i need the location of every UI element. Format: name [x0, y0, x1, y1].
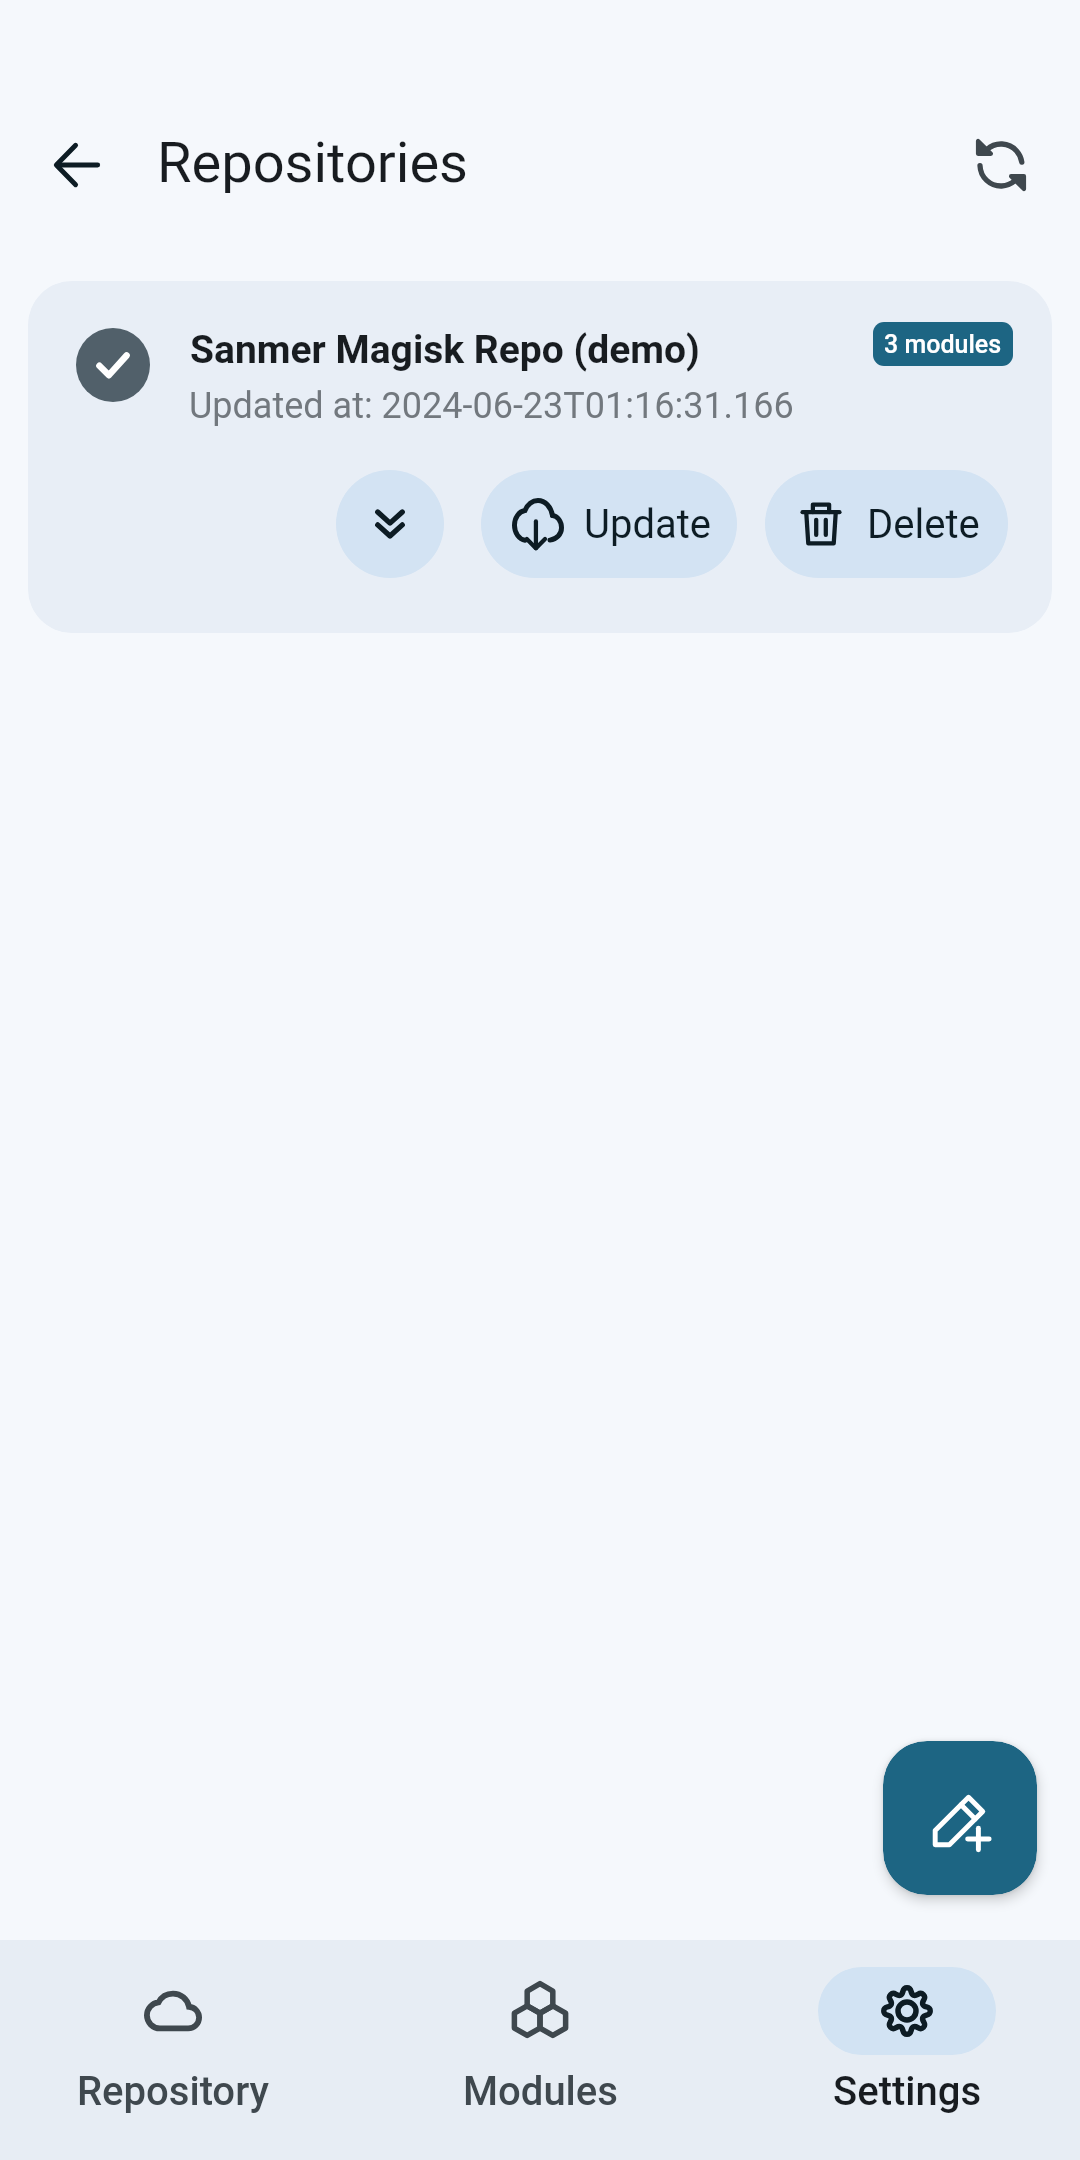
button[interactable]: Expand [336, 470, 444, 578]
staticText: Repository [77, 2068, 270, 2115]
staticText: Repositories [157, 130, 469, 196]
staticText: Sanmer Magisk Repo (demo) [190, 327, 700, 373]
button[interactable]: Sanmer Magisk Repo (demo) [28, 281, 1052, 633]
button[interactable]: Add repository [883, 1741, 1037, 1895]
button[interactable]: Settings [777, 1940, 1037, 2160]
button[interactable]: Update [481, 470, 737, 578]
staticText: Update [584, 501, 712, 548]
staticText: Updated at: 2024-06-23T01:16:31.166 [189, 385, 794, 427]
staticText: Modules [463, 2068, 618, 2115]
staticText: 3 modules [884, 330, 1002, 359]
button[interactable]: Back [33, 121, 121, 209]
button[interactable]: Delete [765, 470, 1008, 578]
button[interactable]: Refresh [957, 121, 1045, 209]
staticText: Settings [833, 2068, 982, 2115]
button[interactable]: Repository [43, 1940, 303, 2160]
staticText: Delete [867, 501, 980, 548]
button[interactable]: Modules [410, 1940, 670, 2160]
